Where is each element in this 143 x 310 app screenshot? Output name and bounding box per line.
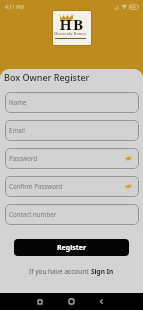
staticText: HB <box>52 14 92 34</box>
button[interactable]: Password <box>5 148 139 169</box>
button[interactable]: Toggle password visibility <box>124 154 133 163</box>
staticText: Password <box>9 154 37 162</box>
button[interactable]: Home <box>61 293 81 310</box>
staticText: Heavenly Bonus <box>50 31 90 36</box>
button[interactable]: Recent apps <box>30 293 50 310</box>
button[interactable]: Back <box>91 293 111 310</box>
button[interactable]: Sign In <box>91 267 114 276</box>
staticText: 4:11 PM <box>5 4 24 11</box>
staticText: Register <box>57 243 87 253</box>
staticText: Name <box>9 98 27 106</box>
staticText: Email <box>9 126 25 134</box>
staticText: Contact number <box>9 210 57 218</box>
staticText: If you have account <box>29 267 91 276</box>
staticText: Confirm Password <box>9 182 63 190</box>
button[interactable]: Contact number <box>5 204 139 225</box>
button[interactable]: Register <box>14 239 129 256</box>
button[interactable]: Toggle password visibility <box>124 182 133 191</box>
staticText: Box Owner Register <box>4 71 90 83</box>
button[interactable]: Name <box>5 92 139 113</box>
button[interactable]: Email <box>5 120 139 141</box>
button[interactable]: Confirm Password <box>5 176 139 197</box>
